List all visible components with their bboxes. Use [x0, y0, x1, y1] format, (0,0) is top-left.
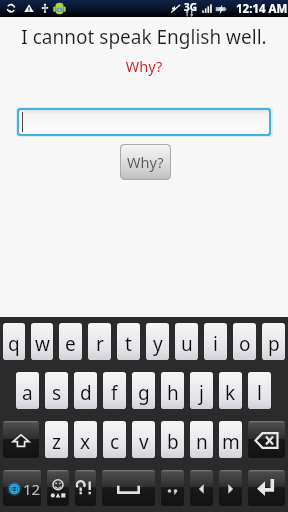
staticText: c: [110, 429, 120, 455]
button[interactable]: l: [248, 372, 271, 409]
button[interactable]: Right: [219, 470, 242, 506]
button[interactable]: Language: [3, 470, 41, 506]
staticText: k: [225, 380, 236, 406]
button[interactable]: i: [204, 323, 227, 360]
button[interactable]: e: [59, 323, 82, 360]
button[interactable]: Why?: [121, 145, 170, 179]
button[interactable]: p: [262, 323, 285, 360]
staticText: 3G: [184, 0, 197, 14]
staticText: d: [80, 380, 92, 406]
button[interactable]: [19, 110, 269, 134]
staticText: o: [239, 331, 251, 357]
button[interactable]: j: [190, 372, 213, 409]
button[interactable]: Shift: [3, 421, 39, 458]
staticText: 12:14 AM: [236, 1, 288, 17]
staticText: a: [22, 380, 33, 406]
button[interactable]: k: [219, 372, 242, 409]
staticText: i: [213, 331, 218, 357]
button[interactable]: w: [31, 323, 53, 360]
button[interactable]: Left: [190, 470, 213, 506]
button[interactable]: Backspace: [248, 421, 285, 458]
button[interactable]: m: [219, 421, 242, 458]
staticText: Why?: [127, 152, 164, 172]
button[interactable]: Enter: [248, 470, 285, 506]
staticText: 12: [23, 479, 41, 499]
staticText: r: [96, 331, 104, 357]
staticText: e: [65, 331, 76, 357]
button[interactable]: o: [233, 323, 256, 360]
button[interactable]: Symbols: [75, 470, 96, 506]
button[interactable]: f: [103, 372, 126, 409]
staticText: s: [52, 380, 62, 406]
staticText: p: [268, 331, 280, 357]
staticText: g: [138, 380, 150, 406]
staticText: y: [153, 331, 163, 357]
staticText: v: [139, 429, 149, 455]
staticText: u: [181, 331, 193, 357]
button[interactable]: a: [16, 372, 39, 409]
staticText: w: [35, 331, 50, 357]
staticText: h: [167, 380, 179, 406]
staticText: t: [125, 331, 132, 357]
staticText: I cannot speak English well.: [0, 24, 288, 50]
button[interactable]: x: [74, 421, 97, 458]
button[interactable]: h: [161, 372, 184, 409]
button[interactable]: c: [103, 421, 126, 458]
staticText: l: [257, 380, 262, 406]
staticText: n: [196, 429, 208, 455]
button[interactable]: t: [117, 323, 140, 360]
button[interactable]: g: [132, 372, 155, 409]
staticText: z: [52, 429, 61, 455]
button[interactable]: b: [161, 421, 184, 458]
button[interactable]: r: [88, 323, 111, 360]
staticText: f: [111, 380, 118, 406]
button[interactable]: s: [45, 372, 68, 409]
button[interactable]: q: [3, 323, 25, 360]
button[interactable]: Space: [102, 470, 155, 506]
staticText: x: [80, 429, 91, 455]
button[interactable]: u: [175, 323, 198, 360]
button[interactable]: v: [132, 421, 155, 458]
button[interactable]: Emoji: [47, 470, 69, 506]
staticText: b: [167, 429, 179, 455]
staticText: q: [8, 331, 20, 357]
button[interactable]: n: [190, 421, 213, 458]
button[interactable]: z: [45, 421, 68, 458]
button[interactable]: d: [74, 372, 97, 409]
staticText: m: [222, 429, 240, 455]
button[interactable]: y: [146, 323, 169, 360]
staticText: j: [199, 380, 204, 406]
button[interactable]: Comma: [161, 470, 184, 506]
staticText: Why?: [0, 56, 288, 76]
